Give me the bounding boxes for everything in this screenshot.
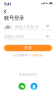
staticText: 9:41 [4, 1, 11, 7]
staticText: 请输入密码 [4, 34, 24, 39]
button[interactable]: Clear phone number [45, 24, 50, 28]
button[interactable]: 登录 [4, 45, 52, 51]
staticText: 账号登录 [4, 15, 24, 21]
staticText: 立即注册 [31, 54, 43, 57]
button[interactable]: Back [2, 7, 9, 16]
staticText: +86 [4, 24, 10, 29]
staticText: 还没有账号？ [13, 54, 31, 57]
staticText: 请输入手机号 [15, 24, 39, 29]
staticText: 登录 [24, 45, 32, 50]
button[interactable]: Show password [45, 34, 50, 39]
button[interactable]: Sign in with WeChat [18, 83, 25, 90]
staticText: 其他登录方式 [19, 73, 37, 76]
button[interactable]: 还没有账号？ [13, 54, 43, 57]
button[interactable]: Sign in with QQ [30, 83, 37, 90]
